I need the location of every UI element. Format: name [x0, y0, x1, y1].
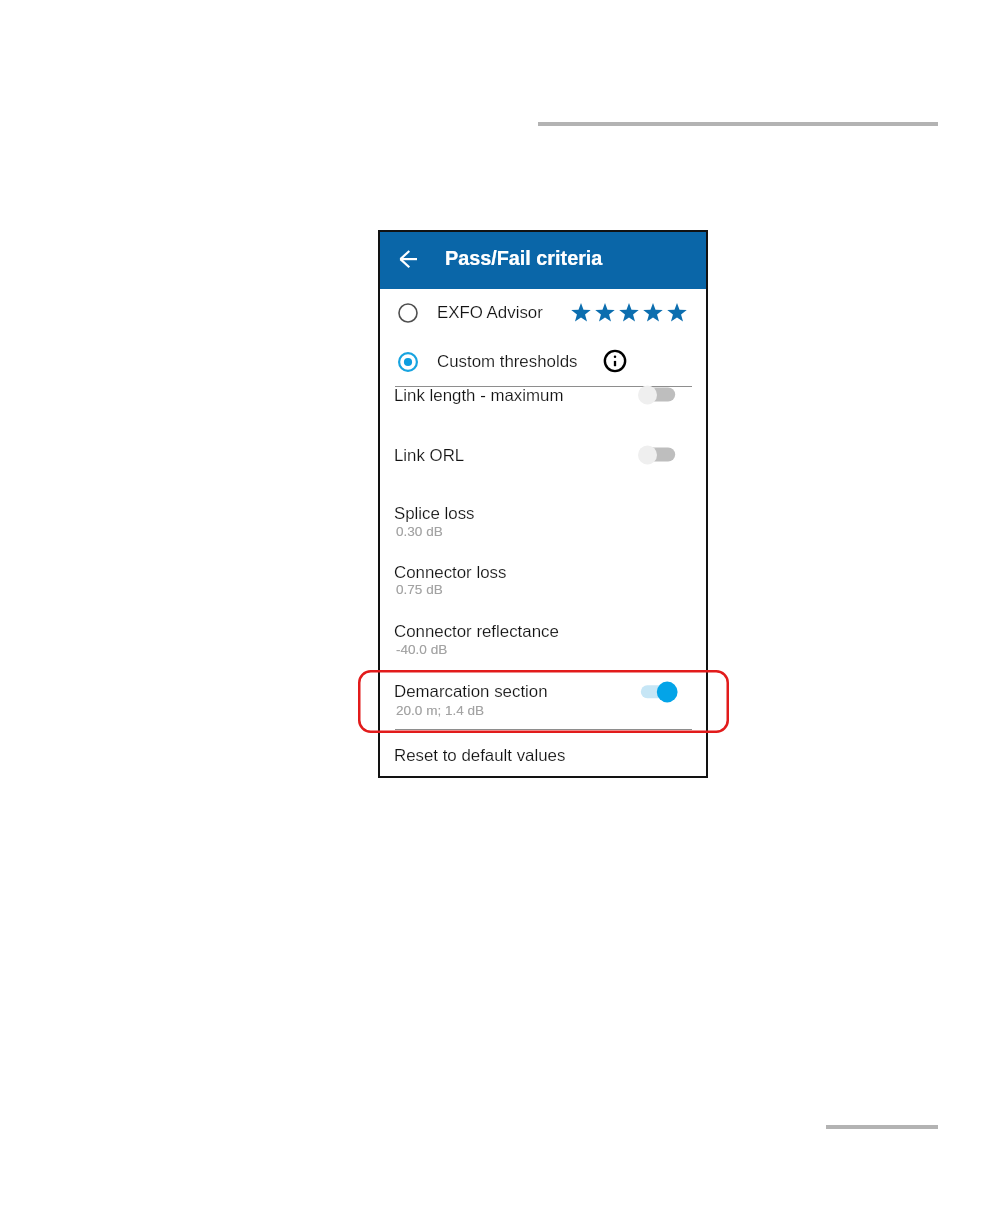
button[interactable]: Back: [394, 242, 424, 272]
staticText: EXFO Advisor: [437, 303, 543, 322]
button[interactable]: Radio button: [380, 291, 706, 339]
button[interactable]: Switch on: [638, 681, 680, 703]
button[interactable]: Connector loss: [380, 557, 706, 615]
button[interactable]: Switch off: [638, 444, 680, 466]
button[interactable]: Connector reflectance: [380, 616, 706, 674]
button[interactable]: Reset to default values: [380, 732, 706, 778]
staticText: Link length - maximum: [394, 386, 564, 405]
staticText: Reset to default values: [394, 746, 566, 765]
button[interactable]: Information: [603, 349, 627, 373]
staticText: Connector loss: [394, 563, 507, 582]
button[interactable]: Demarcation section: [380, 675, 706, 731]
button[interactable]: Link length - maximum: [380, 372, 706, 420]
staticText: -40.0 dB: [396, 642, 448, 657]
staticText: Splice loss: [394, 504, 475, 523]
button[interactable]: Radio button: [398, 303, 418, 323]
staticText: Pass/Fail criteria: [445, 247, 603, 269]
staticText: Demarcation section: [394, 682, 548, 701]
button[interactable]: Switch off: [638, 384, 680, 406]
staticText: Custom thresholds: [437, 352, 578, 371]
staticText: 20.0 m; 1.4 dB: [396, 703, 485, 718]
button[interactable]: Splice loss: [380, 498, 706, 556]
staticText: 0.30 dB: [396, 524, 443, 539]
staticText: Link ORL: [394, 446, 465, 465]
button[interactable]: Radio button: [398, 352, 418, 372]
button[interactable]: Link ORL: [380, 432, 706, 480]
button[interactable]: Radio button: [380, 340, 706, 386]
staticText: 0.75 dB: [396, 582, 443, 597]
staticText: Connector reflectance: [394, 622, 559, 641]
